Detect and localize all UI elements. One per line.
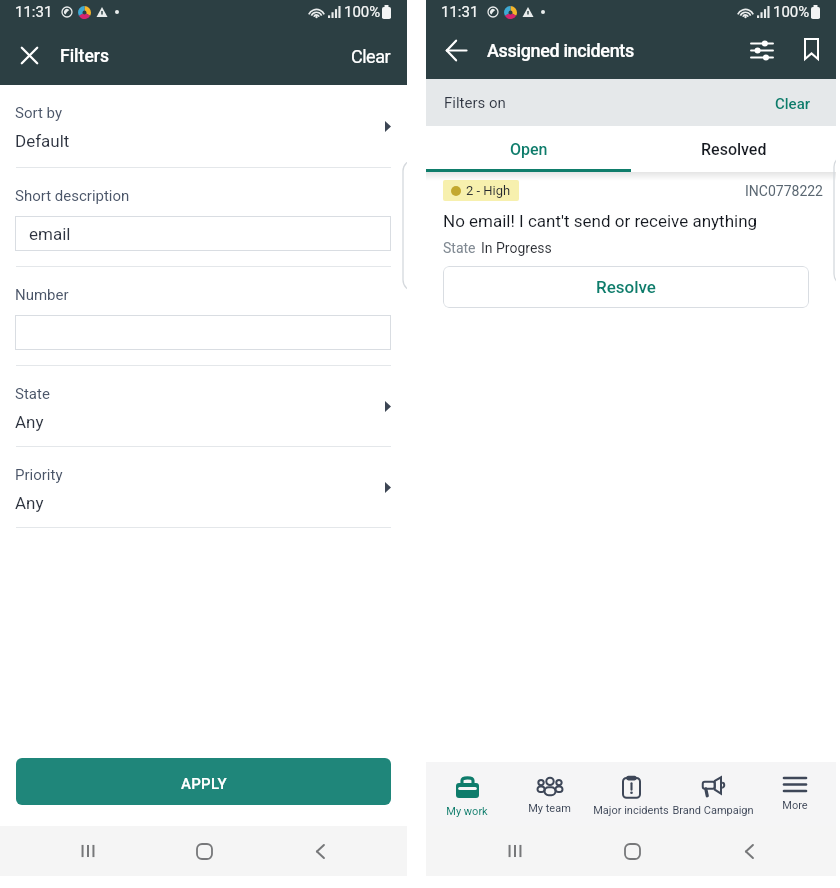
staticText: 11:31 (441, 3, 479, 21)
staticText: State (15, 385, 50, 403)
staticText: Number (15, 286, 69, 304)
button[interactable]: Bookmark (789, 27, 833, 71)
button[interactable]: APPLY (16, 758, 391, 805)
staticText: Filters on (444, 94, 506, 112)
staticText: Resolve (596, 277, 656, 297)
staticText: Default (15, 131, 70, 151)
staticText: Filters (60, 46, 109, 67)
staticText: No email! I cant't send or receive anyth… (443, 211, 758, 231)
staticText: 11:31 (15, 3, 53, 21)
button[interactable]: Clear (758, 83, 836, 123)
button[interactable]: Brand Campaign (672, 762, 754, 826)
button[interactable]: My work (426, 762, 508, 826)
staticText: Brand Campaign (672, 804, 754, 817)
button[interactable]: My team (508, 762, 590, 826)
button[interactable]: Major incidents (590, 762, 672, 826)
button[interactable]: State (0, 366, 407, 446)
staticText: Major incidents (593, 804, 669, 817)
staticText: State (443, 240, 476, 256)
staticText: Any (15, 493, 44, 513)
button[interactable]: Resolved (631, 126, 836, 172)
button[interactable]: Priority (0, 447, 407, 527)
staticText: Any (15, 412, 44, 432)
staticText: INC0778222 (745, 183, 823, 199)
button[interactable]: Open (426, 126, 631, 172)
staticText: My team (528, 802, 571, 815)
button[interactable]: Resolve (443, 266, 809, 308)
staticText: email (29, 224, 71, 244)
staticText: APPLY (181, 775, 227, 793)
staticText: My work (446, 805, 488, 818)
staticText: Clear (351, 46, 391, 67)
staticText: Assigned incidents (487, 40, 634, 61)
staticText: Short description (15, 187, 130, 205)
button[interactable]: More (754, 762, 836, 826)
button[interactable]: email (15, 216, 391, 251)
staticText: 2 - High (466, 183, 511, 198)
button[interactable]: Close (11, 37, 47, 73)
staticText: Open (510, 140, 548, 159)
staticText: Resolved (701, 140, 767, 159)
staticText: More (782, 799, 808, 812)
button[interactable]: Sort by (0, 85, 407, 167)
staticText: Clear (775, 95, 811, 113)
button[interactable]: Back (438, 32, 474, 68)
button[interactable]: Filter settings (735, 23, 789, 77)
staticText: Sort by (15, 104, 62, 122)
staticText: 100% (773, 3, 810, 21)
staticText: Priority (15, 466, 63, 484)
staticText: 100% (344, 3, 381, 21)
staticText: In Progress (481, 240, 552, 256)
button[interactable] (15, 315, 391, 350)
button[interactable]: Clear (335, 32, 407, 77)
